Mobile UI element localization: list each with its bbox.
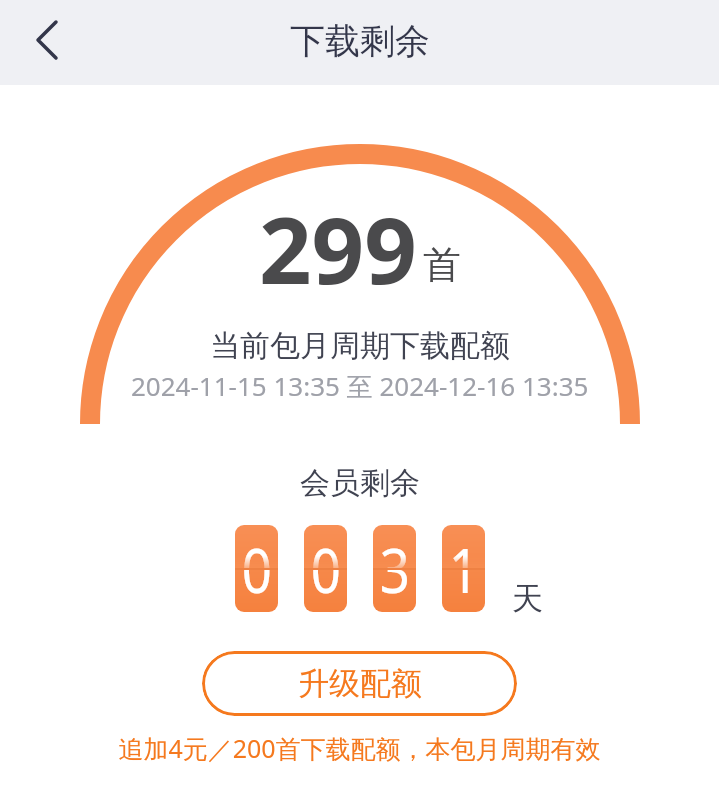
staticText: 当前包月周期下载配额 — [210, 327, 510, 365]
staticText: 追加4元／200首下载配额，本包月周期有效 — [118, 731, 601, 765]
staticText: 升级配额 — [298, 664, 422, 703]
staticText: 0 — [311, 527, 341, 611]
staticText: 天 — [512, 579, 543, 618]
staticText: 会员剩余 — [300, 464, 420, 502]
staticText: 3 — [380, 527, 410, 611]
staticText: 首 — [423, 241, 461, 289]
staticText: 0 — [242, 527, 272, 611]
staticText: 1 — [449, 527, 479, 611]
button[interactable]: 升级配额 — [202, 651, 517, 716]
staticText: 下载剩余 — [290, 19, 430, 63]
staticText: 299 — [259, 186, 417, 311]
button[interactable] — [20, 13, 74, 67]
staticText: 2024-11-15 13:35 至 2024-12-16 13:35 — [131, 368, 589, 404]
